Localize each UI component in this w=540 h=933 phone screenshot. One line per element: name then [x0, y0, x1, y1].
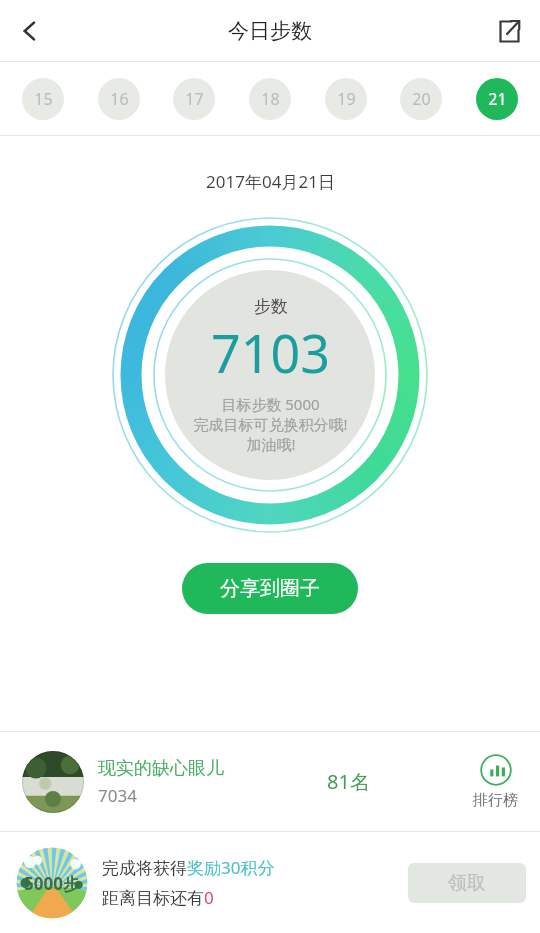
staticText: 21: [488, 88, 507, 110]
button[interactable]: 16: [98, 78, 140, 120]
staticText: 完成将获得奖励30积分: [102, 856, 275, 879]
staticText: 20: [412, 88, 431, 110]
staticText: 7103: [211, 317, 330, 388]
staticText: 5000步: [24, 872, 80, 895]
staticText: 加油哦!: [246, 434, 296, 454]
button[interactable]: 17: [173, 78, 215, 120]
button[interactable]: 现实的缺心眼儿: [0, 732, 540, 831]
staticText: 分享到圈子: [220, 576, 320, 601]
staticText: 2017年04月21日: [206, 170, 335, 193]
staticText: 18: [261, 88, 280, 110]
staticText: 17: [185, 88, 204, 110]
staticText: 排行榜: [473, 791, 518, 810]
button[interactable]: 15: [22, 78, 64, 120]
button[interactable]: 分享到圈子: [182, 563, 358, 614]
button[interactable]: 18: [249, 78, 291, 120]
staticText: 现实的缺心眼儿: [98, 757, 224, 780]
staticText: 今日步数: [228, 18, 312, 44]
staticText: 19: [337, 88, 356, 110]
staticText: 15: [34, 88, 53, 110]
staticText: 领取: [448, 871, 486, 895]
button[interactable]: 19: [325, 78, 367, 120]
staticText: 7034: [98, 784, 137, 807]
button[interactable]: 排行榜: [473, 754, 518, 810]
button[interactable]: Back: [6, 7, 54, 55]
staticText: 16: [110, 88, 129, 110]
staticText: 距离目标还有0: [102, 886, 214, 909]
button[interactable]: Share: [484, 7, 532, 55]
button[interactable]: 领取: [408, 863, 526, 903]
staticText: 步数: [254, 296, 288, 317]
staticText: 目标步数 5000: [221, 394, 320, 414]
staticText: 81名: [327, 768, 370, 795]
button[interactable]: 21: [476, 78, 518, 120]
button[interactable]: 20: [400, 78, 442, 120]
staticText: 完成目标可兑换积分哦!: [193, 414, 348, 434]
